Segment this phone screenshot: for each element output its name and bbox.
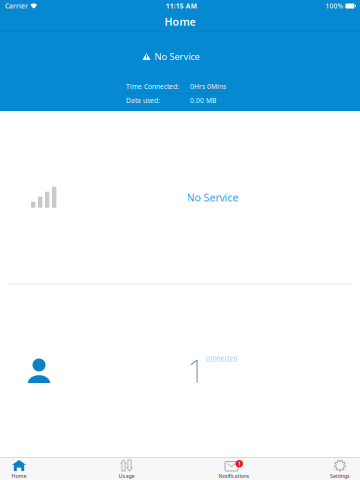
staticText: Settings: [330, 472, 350, 480]
staticText: No Service: [186, 190, 238, 204]
staticText: 100%: [325, 2, 343, 10]
button[interactable]: Usage: [107, 458, 145, 480]
staticText: Carrier: [5, 2, 28, 10]
staticText: 1: [238, 460, 241, 467]
staticText: 0Hrs 0Mins: [190, 82, 226, 91]
staticText: Home: [11, 472, 26, 480]
staticText: Usage: [118, 472, 134, 480]
staticText: 1: [187, 350, 204, 391]
staticText: 11:15 AM: [166, 2, 197, 10]
staticText: 0.00 MB: [190, 96, 216, 105]
button[interactable]: Home: [0, 458, 38, 480]
button[interactable]: 1: [215, 458, 253, 480]
staticText: Home: [164, 14, 195, 29]
staticText: connected: [205, 353, 237, 362]
staticText: Notifications: [218, 472, 249, 480]
staticText: Data used:: [126, 96, 160, 105]
button[interactable]: 1: [187, 350, 237, 391]
staticText: Time Connected:: [126, 82, 179, 91]
button[interactable]: Settings: [321, 458, 359, 480]
staticText: No Service: [154, 50, 199, 63]
